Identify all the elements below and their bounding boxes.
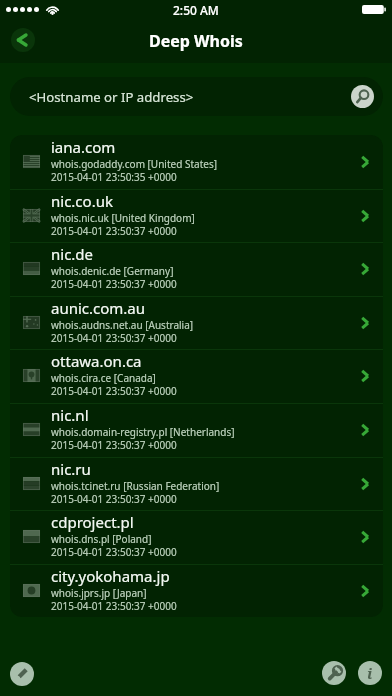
staticText: 2015-04-01 23:50:37 +0000: [51, 277, 177, 291]
staticText: nic.co.uk: [51, 191, 113, 211]
staticText: 2015-04-01 23:50:35 +0000: [51, 170, 177, 184]
button[interactable]: <Hostname or IP address>: [10, 77, 383, 116]
staticText: 2:50 AM: [173, 2, 219, 18]
staticText: whois.dns.pl [Poland]: [51, 532, 152, 546]
staticText: whois.denic.de [Germany]: [51, 264, 174, 278]
staticText: 2015-04-01 23:50:37 +0000: [51, 331, 177, 345]
button[interactable]: ottawa.on.ca: [10, 349, 383, 403]
button[interactable]: nic.ru: [10, 457, 383, 511]
staticText: whois.audns.net.au [Australia]: [51, 318, 194, 332]
staticText: whois.godaddy.com [United States]: [51, 157, 217, 171]
staticText: whois.cira.ce [Canada]: [51, 371, 156, 385]
staticText: nic.nl: [51, 405, 89, 425]
button[interactable]: Info: [358, 661, 382, 685]
staticText: whois.tcinet.ru [Russian Federation]: [51, 479, 220, 493]
button[interactable]: cdproject.pl: [10, 510, 383, 564]
staticText: 2015-04-01 23:50:37 +0000: [51, 599, 177, 613]
button[interactable]: nic.de: [10, 242, 383, 296]
staticText: city.yokohama.jp: [51, 566, 170, 586]
button[interactable]: city.yokohama.jp: [10, 564, 383, 617]
button[interactable]: Back: [11, 28, 35, 52]
staticText: 2015-04-01 23:50:37 +0000: [51, 492, 177, 506]
staticText: 2015-04-01 23:50:37 +0000: [51, 438, 177, 452]
button[interactable]: aunic.com.au: [10, 296, 383, 350]
button[interactable]: nic.nl: [10, 403, 383, 457]
staticText: whois.jprs.jp [Japan]: [51, 586, 147, 600]
staticText: whois.nic.uk [United Kingdom]: [51, 211, 195, 225]
staticText: 2015-04-01 23:50:37 +0000: [51, 224, 177, 238]
staticText: aunic.com.au: [51, 298, 146, 318]
staticText: Deep Whois: [149, 30, 243, 52]
button[interactable]: Settings: [322, 661, 346, 685]
staticText: 2015-04-01 23:50:37 +0000: [51, 384, 177, 398]
staticText: whois.domain-registry.pl [Netherlands]: [51, 425, 235, 439]
button[interactable]: nic.co.uk: [10, 189, 383, 243]
staticText: ottawa.on.ca: [51, 351, 142, 371]
staticText: i: [367, 663, 373, 683]
button[interactable]: Edit: [10, 662, 34, 686]
staticText: <Hostname or IP address>: [29, 88, 194, 106]
button[interactable]: Search: [351, 85, 374, 108]
staticText: nic.ru: [51, 459, 91, 479]
staticText: iana.com: [51, 137, 116, 157]
button[interactable]: iana.com: [10, 135, 383, 189]
staticText: cdproject.pl: [51, 512, 134, 532]
staticText: nic.de: [51, 244, 94, 264]
staticText: 2015-04-01 23:50:37 +0000: [51, 545, 177, 559]
